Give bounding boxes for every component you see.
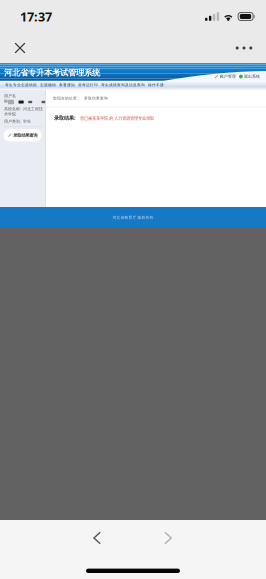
- staticText: 用户名 称: [4, 93, 16, 104]
- staticText: 河北省教育厅 版权所有: [112, 215, 153, 220]
- staticText: 账户管理: [220, 74, 236, 79]
- staticText: 您已被某某学院 的 人力资源管理专业录取: [80, 115, 154, 121]
- button[interactable]: More: [228, 33, 260, 63]
- staticText: 录取结果:: [54, 114, 75, 121]
- staticText: 录取结果查询: [13, 133, 37, 138]
- staticText: 用户类别: 学生: [4, 119, 31, 124]
- staticText: 17:37: [20, 8, 52, 25]
- staticText: 退出系统: [244, 74, 260, 79]
- staticText: 高校名称: 河北工程技 术学院: [4, 106, 43, 117]
- staticText: 河北省专升本考试管理系统: [4, 68, 100, 78]
- button[interactable]: Forward: [146, 521, 190, 555]
- staticText: 您现在的位置： 录取结果查询: [53, 96, 108, 101]
- staticText: 考生专业志愿填报 志愿撤销 查看通知 准考证打印 考生成绩查询及信息查询 操作手…: [5, 82, 164, 87]
- button[interactable]: Close: [6, 33, 34, 63]
- button[interactable]: 录取结果查询: [3, 129, 41, 141]
- button[interactable]: Back: [75, 521, 119, 555]
